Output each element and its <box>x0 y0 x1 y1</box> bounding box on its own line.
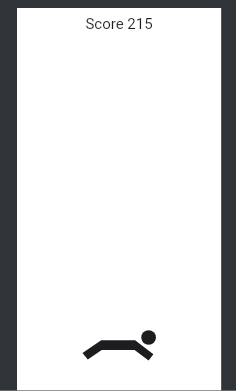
button[interactable]: Bounce game board <box>0 0 236 391</box>
staticText: Score 215 <box>17 15 221 33</box>
